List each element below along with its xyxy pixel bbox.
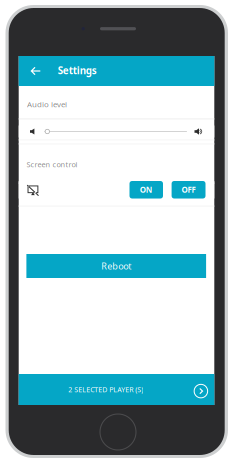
staticText: Settings [58,64,97,77]
staticText: Audio level [27,99,67,109]
staticText: Screen control [27,159,78,169]
button[interactable]: Reboot [26,254,206,278]
staticText: OFF [181,184,195,195]
button[interactable]: ON [129,181,163,198]
staticText: ON [140,184,153,195]
staticText: Reboot [101,260,131,272]
staticText: 2 SELECTED PLAYER (S) [68,385,143,394]
button[interactable]: Back [24,56,46,86]
button[interactable]: 2 SELECTED PLAYER (S) [19,374,214,405]
button[interactable]: OFF [172,181,205,198]
